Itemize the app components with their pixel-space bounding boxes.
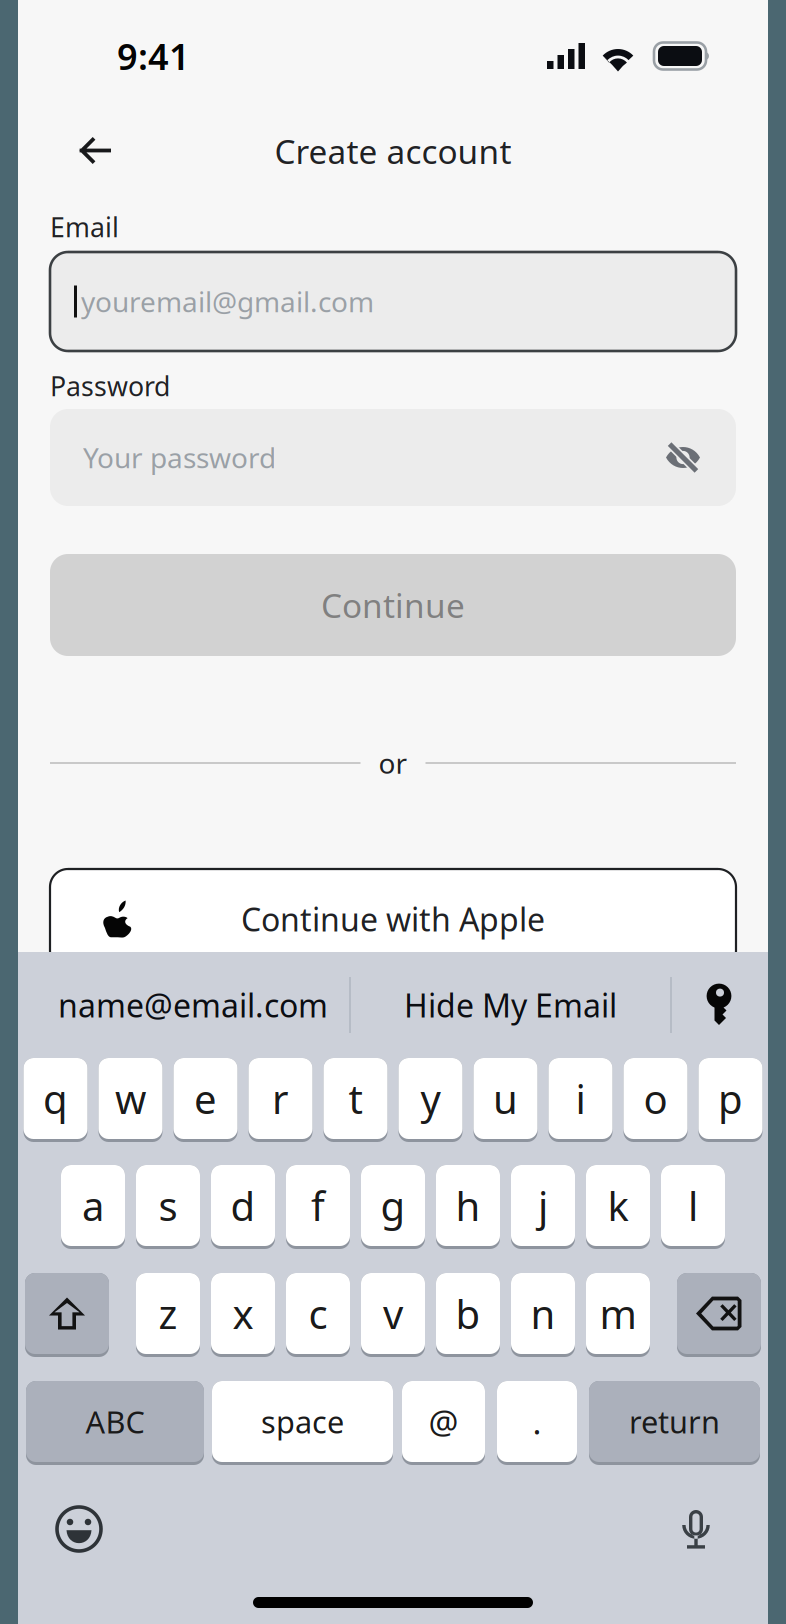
button[interactable]: t [323, 1058, 387, 1142]
staticText: t [348, 1072, 362, 1125]
staticText: r [272, 1072, 289, 1125]
button[interactable]: name@email.com [18, 965, 349, 1045]
button[interactable]: q [23, 1058, 87, 1142]
staticText: h [455, 1179, 480, 1232]
button[interactable]: o [623, 1058, 687, 1142]
button[interactable]: c [286, 1273, 350, 1357]
staticText: v [383, 1287, 403, 1340]
staticText: Continue with Apple [241, 898, 545, 940]
button[interactable]: Passwords [672, 965, 768, 1045]
button[interactable]: Delete [677, 1273, 761, 1357]
staticText: a [82, 1179, 104, 1232]
staticText: w [115, 1072, 146, 1125]
staticText: Continue [321, 583, 465, 627]
button[interactable]: u [473, 1058, 537, 1142]
staticText: j [538, 1179, 548, 1232]
button[interactable]: k [586, 1165, 650, 1249]
staticText: or [378, 744, 407, 782]
button[interactable]: Continue with Apple [50, 869, 736, 969]
button[interactable]: d [211, 1165, 275, 1249]
staticText: return [629, 1401, 720, 1442]
staticText: k [607, 1179, 628, 1232]
staticText: Email [50, 209, 119, 245]
staticText: x [232, 1287, 253, 1340]
staticText: q [43, 1072, 68, 1125]
button[interactable]: space [212, 1381, 393, 1465]
staticText: p [718, 1072, 743, 1125]
staticText: y [420, 1072, 440, 1125]
button[interactable]: return [589, 1381, 760, 1465]
button[interactable]: b [436, 1273, 500, 1357]
staticText: n [530, 1287, 555, 1340]
button[interactable]: a [61, 1165, 125, 1249]
button[interactable]: y [398, 1058, 462, 1142]
staticText: s [158, 1179, 177, 1232]
button[interactable]: @ [402, 1381, 485, 1465]
button[interactable]: r [248, 1058, 312, 1142]
button[interactable]: e [173, 1058, 237, 1142]
button[interactable]: . [497, 1381, 577, 1465]
staticText: g [380, 1179, 405, 1232]
staticText: l [688, 1179, 698, 1232]
staticText: Hide My Email [404, 984, 617, 1026]
button[interactable]: x [211, 1273, 275, 1357]
button[interactable]: s [136, 1165, 200, 1249]
staticText: b [455, 1287, 480, 1340]
staticText: Password [50, 368, 170, 404]
button[interactable]: Emoji [51, 1501, 107, 1557]
staticText: u [493, 1072, 518, 1125]
button[interactable]: Back [59, 120, 131, 182]
staticText: 9:41 [117, 32, 190, 80]
button[interactable]: n [511, 1273, 575, 1357]
button[interactable]: m [586, 1273, 650, 1357]
button[interactable]: Dictate [668, 1501, 724, 1557]
staticText: o [643, 1072, 667, 1125]
button[interactable]: j [511, 1165, 575, 1249]
staticText: ABC [85, 1401, 144, 1442]
staticText: z [158, 1287, 177, 1340]
staticText: youremail@gmail.com [81, 283, 374, 320]
staticText: e [194, 1072, 217, 1125]
staticText: f [311, 1179, 325, 1232]
staticText: name@email.com [58, 984, 328, 1026]
button[interactable]: ABC [26, 1381, 204, 1465]
button[interactable]: Hide My Email [351, 965, 670, 1045]
button[interactable]: h [436, 1165, 500, 1249]
staticText: Your password [83, 439, 276, 476]
staticText: d [230, 1179, 255, 1232]
staticText: . [532, 1399, 541, 1444]
staticText: m [599, 1287, 636, 1340]
button[interactable]: Continue [50, 554, 736, 656]
button[interactable]: p [698, 1058, 762, 1142]
button[interactable]: z [136, 1273, 200, 1357]
button[interactable]: g [361, 1165, 425, 1249]
staticText: Create account [274, 129, 511, 173]
staticText: i [575, 1072, 585, 1125]
button[interactable]: i [548, 1058, 612, 1142]
button[interactable]: w [98, 1058, 162, 1142]
staticText: c [308, 1287, 327, 1340]
button[interactable]: Show password [663, 436, 703, 478]
staticText: @ [428, 1399, 458, 1444]
button[interactable]: l [661, 1165, 725, 1249]
staticText: space [261, 1401, 344, 1442]
button[interactable]: f [286, 1165, 350, 1249]
button[interactable]: v [361, 1273, 425, 1357]
button[interactable]: Shift [25, 1273, 109, 1357]
